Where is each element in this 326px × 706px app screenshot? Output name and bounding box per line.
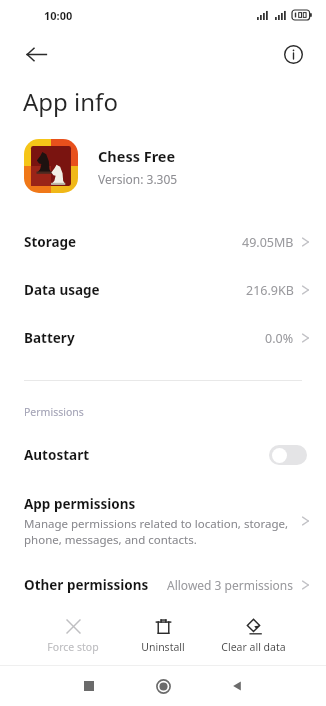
staticText: Version: 3.305 <box>98 171 178 187</box>
staticText: Manage permissions related to location, … <box>24 516 289 547</box>
staticText: 49.05MB <box>242 234 294 251</box>
staticText: Other permissions <box>24 576 149 594</box>
button[interactable]: Recents <box>66 666 112 706</box>
staticText: Allowed 3 permissions <box>167 577 294 593</box>
button[interactable]: Force stop <box>34 616 112 656</box>
staticText: Force stop <box>47 640 99 654</box>
staticText: Storage <box>24 233 77 251</box>
staticText: Data usage <box>24 281 100 299</box>
button[interactable]: App permissions <box>0 489 326 553</box>
button[interactable]: Autostart <box>0 435 326 475</box>
staticText: Autostart <box>24 446 90 464</box>
staticText: Clear all data <box>221 640 286 654</box>
staticText: Chess Free <box>98 146 176 166</box>
button[interactable]: Back <box>214 666 260 706</box>
button[interactable]: About this app <box>272 34 314 74</box>
staticText: Battery <box>24 329 75 347</box>
button[interactable]: Back <box>14 34 58 74</box>
staticText: App info <box>23 85 118 118</box>
staticText: Permissions <box>24 405 84 419</box>
button[interactable]: Uninstall <box>124 616 202 656</box>
staticText: 0.0% <box>265 330 294 347</box>
button[interactable]: Other permissions <box>0 563 326 607</box>
staticText: 10:00 <box>44 8 73 23</box>
button[interactable]: Battery <box>0 314 326 362</box>
staticText: 216.9KB <box>246 282 294 299</box>
button[interactable]: Storage <box>0 218 326 266</box>
button[interactable]: Home <box>140 666 186 706</box>
staticText: App permissions <box>24 495 136 513</box>
button[interactable]: Data usage <box>0 266 326 314</box>
button[interactable]: Clear all data <box>214 616 292 656</box>
staticText: Uninstall <box>141 640 185 654</box>
